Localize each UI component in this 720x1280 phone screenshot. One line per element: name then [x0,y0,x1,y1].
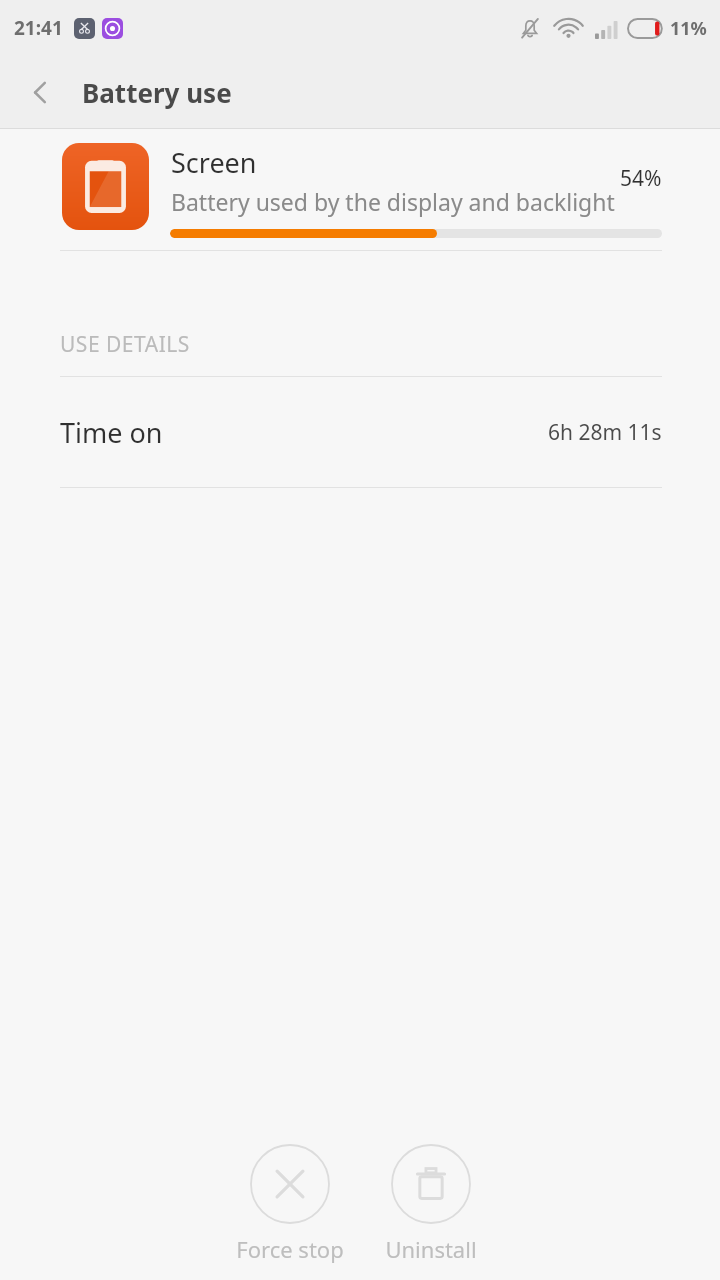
button[interactable]: Back [12,64,68,120]
staticText: Battery use [82,75,232,110]
staticText: Time on [60,414,163,451]
staticText: Force stop [236,1234,344,1264]
staticText: Screen [171,144,257,181]
staticText: USE DETAILS [60,330,190,359]
staticText: 11% [670,16,707,41]
staticText: 6h 28m 11s [548,418,662,447]
staticText: Uninstall [385,1234,477,1264]
button[interactable]: Uninstall [360,1140,501,1268]
button[interactable]: Force stop [219,1140,360,1268]
staticText: Battery used by the display and backligh… [171,186,615,217]
staticText: 21:41 [14,15,63,41]
button[interactable]: Time on [0,377,720,487]
staticText: 54% [620,164,662,193]
button[interactable]: Screen [0,129,720,250]
